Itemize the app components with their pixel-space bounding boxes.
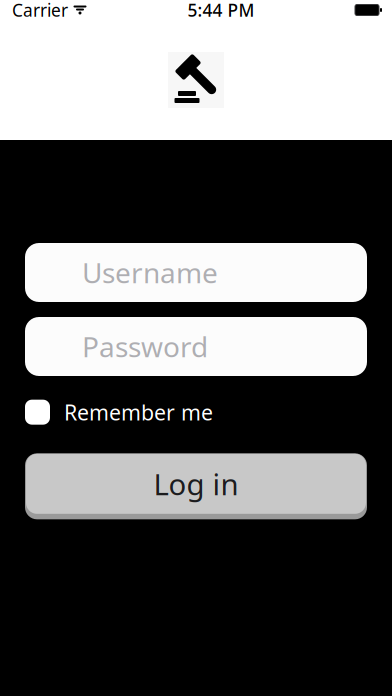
button[interactable]: Password (25, 317, 367, 376)
staticText: Remember me (64, 398, 213, 426)
staticText: Username (82, 254, 218, 291)
staticText: 5:44 PM (187, 0, 254, 21)
button[interactable]: Log in (25, 453, 367, 519)
staticText: Carrier (12, 0, 68, 21)
staticText: Password (82, 328, 208, 365)
button[interactable]: Remember me (25, 394, 213, 430)
button[interactable]: Username (25, 243, 367, 302)
staticText: Log in (153, 464, 238, 503)
